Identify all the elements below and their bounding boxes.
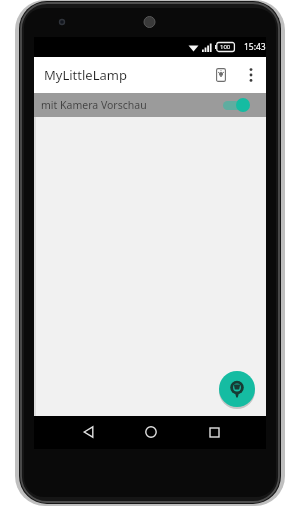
button[interactable] — [208, 57, 234, 93]
button[interactable] — [202, 420, 226, 444]
staticText: 100 — [220, 43, 231, 51]
staticText: MyLittleLamp — [44, 66, 127, 84]
button[interactable]: mit Kamera Vorschau — [34, 93, 266, 117]
staticText: mit Kamera Vorschau — [41, 98, 147, 112]
button[interactable] — [219, 371, 255, 407]
staticText: 15:43 — [244, 41, 266, 53]
button[interactable] — [139, 420, 163, 444]
button[interactable] — [76, 420, 100, 444]
button[interactable] — [240, 57, 262, 93]
